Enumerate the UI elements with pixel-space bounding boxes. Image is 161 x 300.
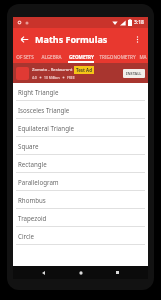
staticText: Isosceles Triangle bbox=[18, 106, 70, 114]
button[interactable]: Square bbox=[13, 137, 148, 155]
staticText: MA bbox=[139, 54, 147, 60]
button[interactable]: Zomato - Restaurant bbox=[13, 63, 148, 83]
staticText: Parallelogram bbox=[18, 178, 59, 186]
button[interactable]: Circle bbox=[13, 227, 148, 245]
staticText: GEOMETRY bbox=[69, 54, 94, 60]
button[interactable]: Recents bbox=[111, 266, 124, 279]
button[interactable]: Rectangle bbox=[13, 155, 148, 173]
staticText: 4.0 bbox=[32, 75, 37, 80]
button[interactable]: Home bbox=[74, 266, 87, 279]
staticText: Trapezoid bbox=[18, 214, 47, 222]
button[interactable]: TRIGONOMETRY bbox=[97, 50, 138, 63]
button[interactable]: Equilateral Triangle bbox=[13, 119, 148, 137]
staticText: ALGEBRA bbox=[41, 54, 62, 60]
staticText: Square bbox=[18, 142, 39, 150]
button[interactable]: ALGEBRA bbox=[37, 50, 65, 63]
staticText: Equilateral Triangle bbox=[18, 124, 75, 132]
button[interactable]: Rhombus bbox=[13, 191, 148, 209]
staticText: Rectangle bbox=[18, 160, 47, 168]
staticText: 3:18 bbox=[134, 19, 144, 26]
staticText: Circle bbox=[18, 232, 34, 240]
staticText: OF SETS bbox=[16, 54, 34, 60]
button[interactable]: More options bbox=[126, 28, 148, 50]
staticText: 10 Million bbox=[44, 75, 60, 80]
staticText: Right Triangle bbox=[18, 88, 59, 96]
button[interactable]: Parallelogram bbox=[13, 173, 148, 191]
button[interactable]: INSTALL bbox=[126, 71, 142, 76]
button[interactable]: Right Triangle bbox=[13, 83, 148, 101]
staticText: Rhombus bbox=[18, 196, 46, 204]
staticText: INSTALL bbox=[126, 71, 142, 76]
staticText: FREE bbox=[67, 75, 75, 80]
button[interactable]: Back bbox=[37, 266, 50, 279]
staticText: Zomato - Restaurant bbox=[32, 67, 73, 73]
staticText: TRIGONOMETRY bbox=[99, 54, 136, 60]
button[interactable]: GEOMETRY bbox=[65, 50, 97, 63]
button[interactable]: MA bbox=[138, 50, 148, 63]
button[interactable]: Trapezoid bbox=[13, 209, 148, 227]
staticText: Maths Formulas bbox=[35, 33, 108, 45]
button[interactable]: OF SETS bbox=[13, 50, 37, 63]
button[interactable]: Back bbox=[13, 28, 35, 50]
staticText: Test Ad bbox=[76, 67, 92, 73]
button[interactable]: Isosceles Triangle bbox=[13, 101, 148, 119]
